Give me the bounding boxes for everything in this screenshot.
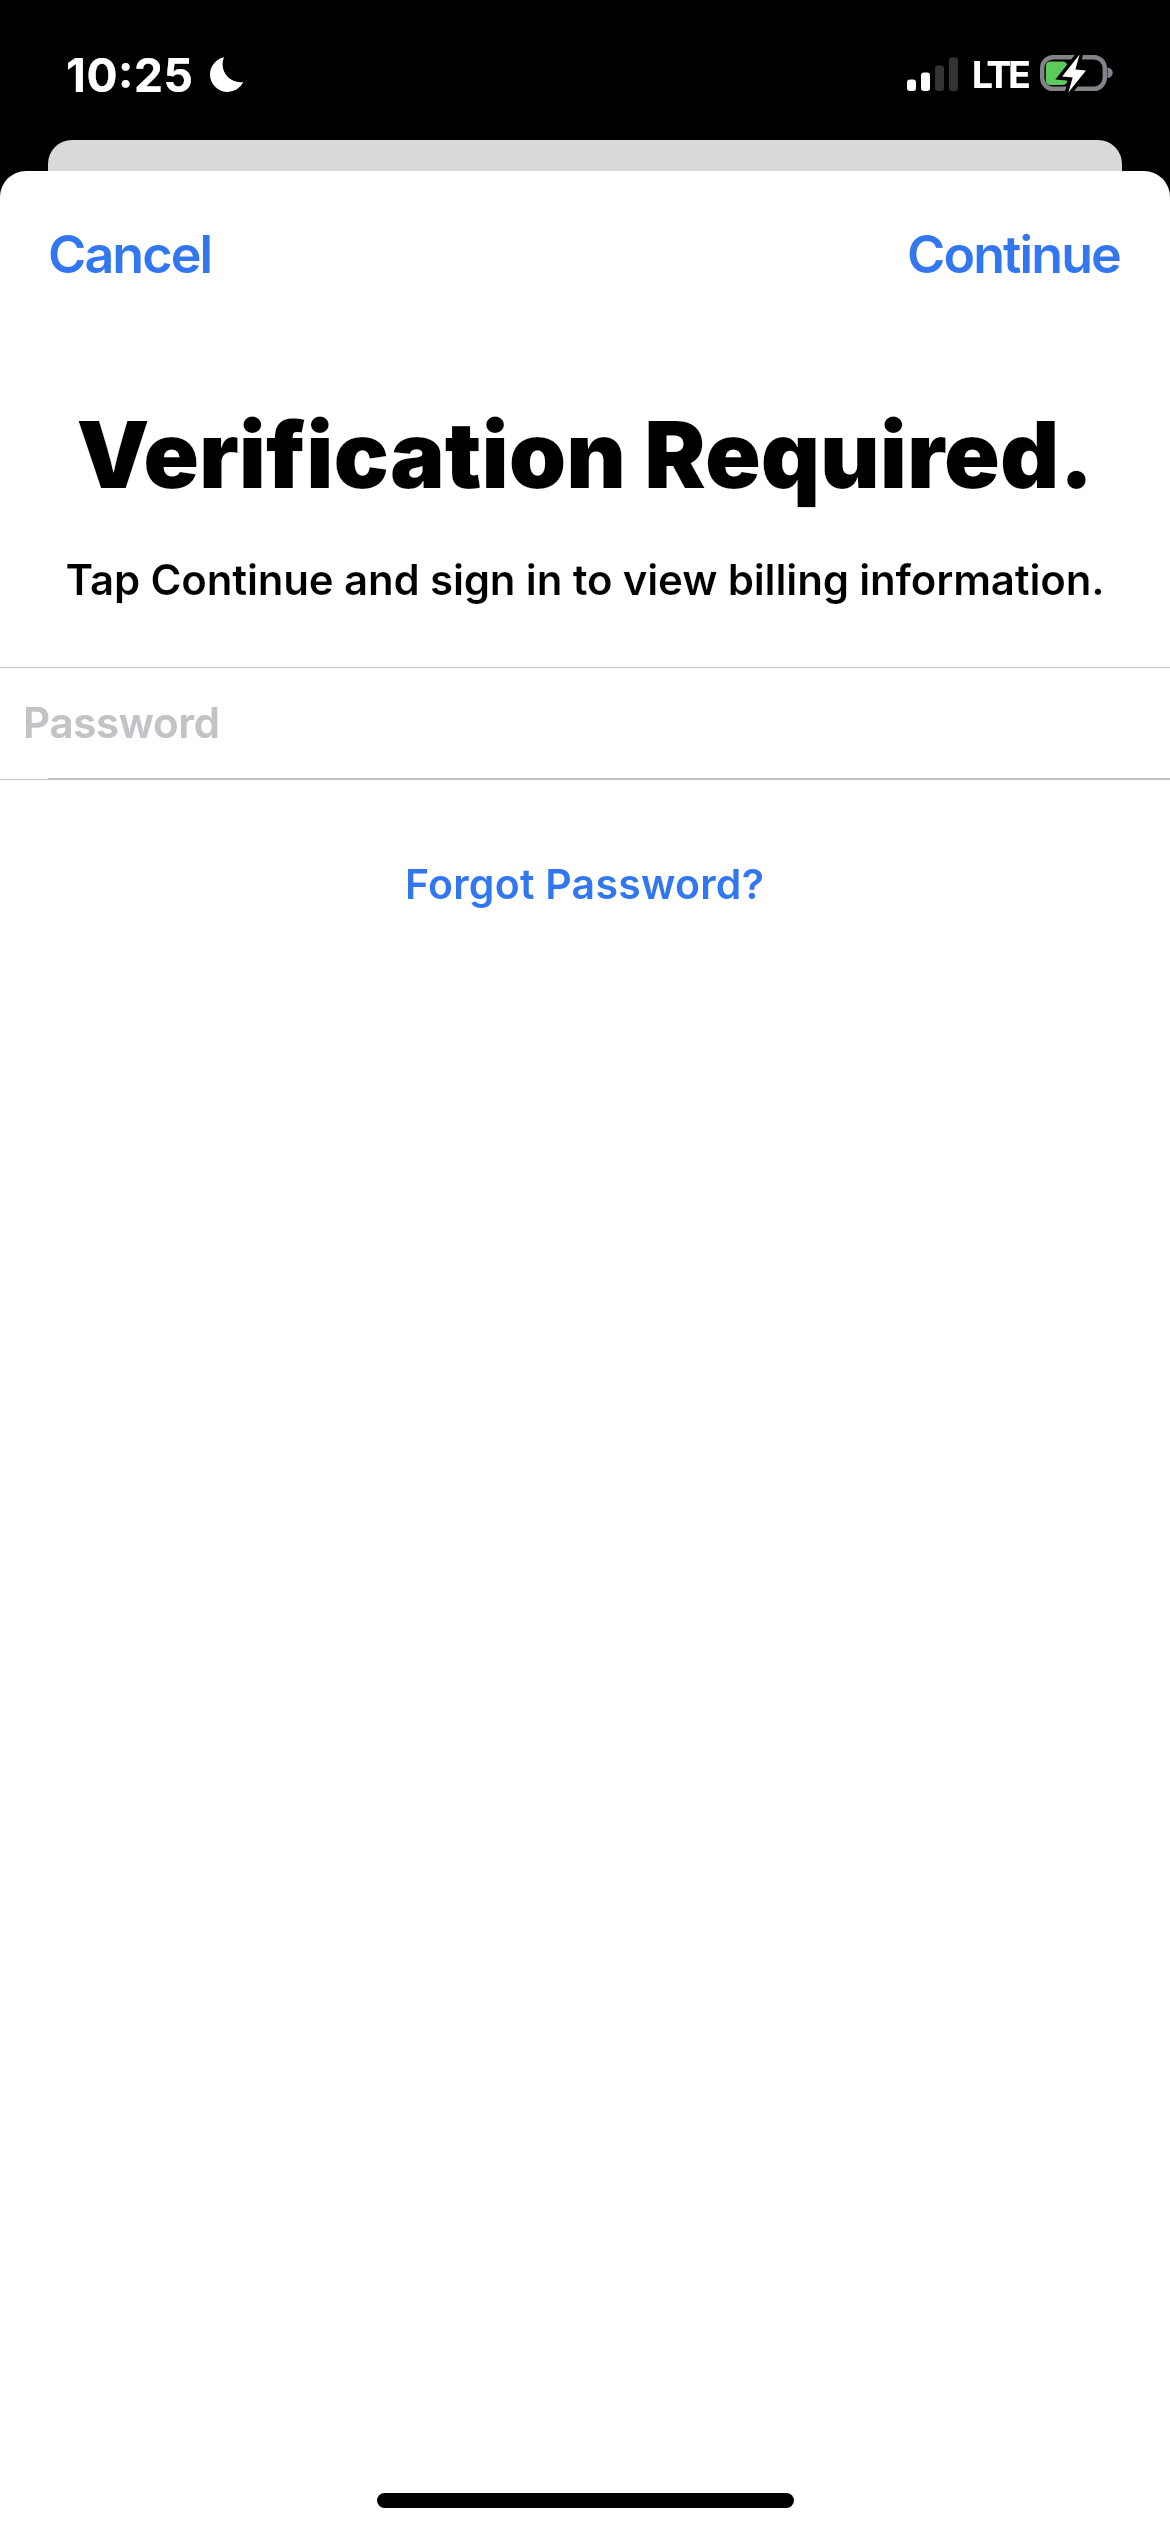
staticText: Cancel (48, 223, 212, 286)
button[interactable]: Cancel (34, 209, 226, 300)
staticText: Verification Required. (0, 399, 1170, 510)
other: Do Not Disturb on (210, 57, 245, 92)
other: Cellular signal strength (907, 57, 958, 91)
staticText: Forgot Password? (405, 859, 765, 909)
button[interactable]: Password (0, 668, 1170, 778)
button[interactable]: Continue (893, 209, 1134, 300)
button[interactable]: Forgot Password? (381, 845, 789, 923)
other: Battery charging (1040, 55, 1115, 92)
other: Home indicator (377, 2493, 794, 2508)
staticText: LTE (972, 52, 1028, 97)
staticText: Password (23, 697, 220, 748)
staticText: Continue (907, 223, 1120, 286)
staticText: Tap Continue and sign in to view billing… (0, 554, 1170, 605)
staticText: 10:25 (66, 47, 194, 103)
